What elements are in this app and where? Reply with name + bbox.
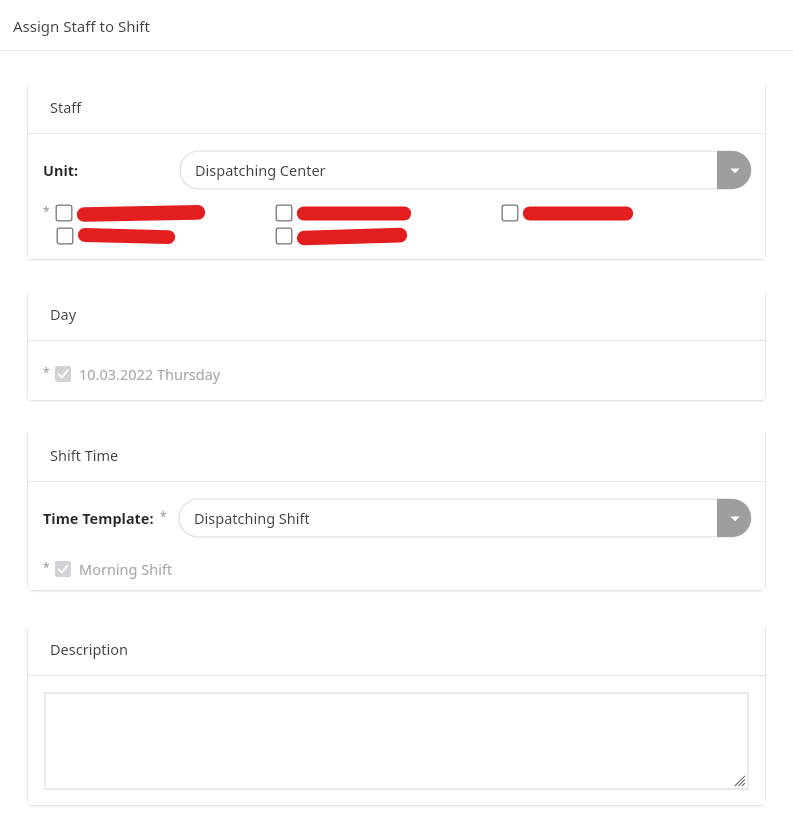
staticText: Staff: [50, 97, 82, 117]
button[interactable]: [501, 204, 519, 222]
button[interactable]: [55, 204, 73, 222]
staticText: *: [43, 203, 50, 219]
button[interactable]: Description text area: [45, 693, 748, 789]
button[interactable]: [275, 204, 293, 222]
staticText: Day: [50, 304, 77, 324]
staticText: Assign Staff to Shift: [13, 16, 150, 36]
staticText: *: [43, 559, 50, 575]
staticText: Description: [50, 639, 129, 659]
button[interactable]: Dispatching Shift: [179, 499, 751, 537]
button[interactable]: [56, 227, 74, 245]
staticText: Unit:: [43, 160, 79, 180]
button[interactable]: *: [43, 559, 765, 579]
button[interactable]: Dispatching Center: [180, 151, 751, 189]
staticText: Dispatching Center: [195, 160, 326, 180]
staticText: *: [160, 508, 167, 524]
button[interactable]: [275, 227, 293, 245]
staticText: Dispatching Shift: [194, 508, 310, 528]
staticText: Time Template:: [43, 508, 154, 528]
staticText: Morning Shift: [79, 559, 173, 579]
staticText: Shift Time: [50, 445, 119, 465]
button[interactable]: *: [43, 364, 765, 384]
staticText: 10.03.2022 Thursday: [79, 364, 221, 384]
staticText: *: [43, 364, 50, 380]
